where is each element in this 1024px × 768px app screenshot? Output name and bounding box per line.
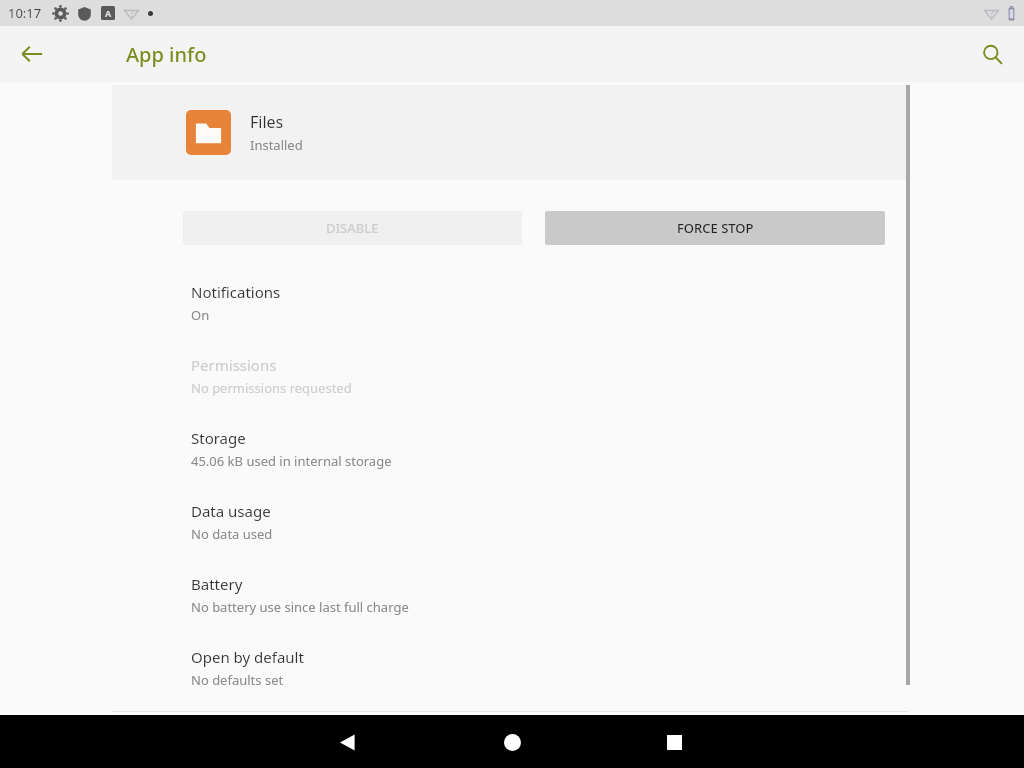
- button[interactable]: Open by default: [0, 631, 1024, 704]
- staticText: FORCE STOP: [677, 219, 754, 237]
- staticText: 45.06 kB used in internal storage: [191, 452, 392, 470]
- staticText: ?: [990, 8, 994, 19]
- button[interactable]: Files: [112, 85, 908, 180]
- button[interactable]: FORCE STOP: [545, 211, 885, 245]
- staticText: Permissions: [191, 355, 277, 375]
- staticText: Open by default: [191, 647, 304, 667]
- staticText: DISABLE: [326, 219, 379, 237]
- staticText: No battery use since last full charge: [191, 598, 409, 616]
- staticText: Battery: [191, 574, 243, 594]
- button[interactable]: Back: [8, 30, 56, 78]
- staticText: Data usage: [191, 501, 271, 521]
- staticText: Installed: [250, 136, 303, 154]
- button[interactable]: Search: [968, 30, 1016, 78]
- button[interactable]: Back: [323, 718, 371, 766]
- staticText: Storage: [191, 428, 246, 448]
- staticText: Notifications: [191, 282, 281, 302]
- button[interactable]: Recents: [650, 718, 698, 766]
- button[interactable]: Battery: [0, 558, 1024, 631]
- button[interactable]: Data usage: [0, 485, 1024, 558]
- button[interactable]: Notifications: [0, 266, 1024, 339]
- staticText: No permissions requested: [191, 379, 352, 397]
- button[interactable]: Permissions: [0, 339, 1024, 412]
- staticText: On: [191, 306, 210, 324]
- staticText: Files: [250, 111, 284, 133]
- staticText: No defaults set: [191, 671, 284, 689]
- staticText: 10:17: [8, 4, 42, 22]
- button[interactable]: Storage: [0, 412, 1024, 485]
- staticText: ?: [130, 8, 134, 19]
- staticText: App info: [126, 41, 207, 68]
- button[interactable]: Home: [488, 718, 536, 766]
- button[interactable]: DISABLE: [183, 211, 522, 245]
- staticText: A: [105, 7, 112, 19]
- staticText: No data used: [191, 525, 273, 543]
